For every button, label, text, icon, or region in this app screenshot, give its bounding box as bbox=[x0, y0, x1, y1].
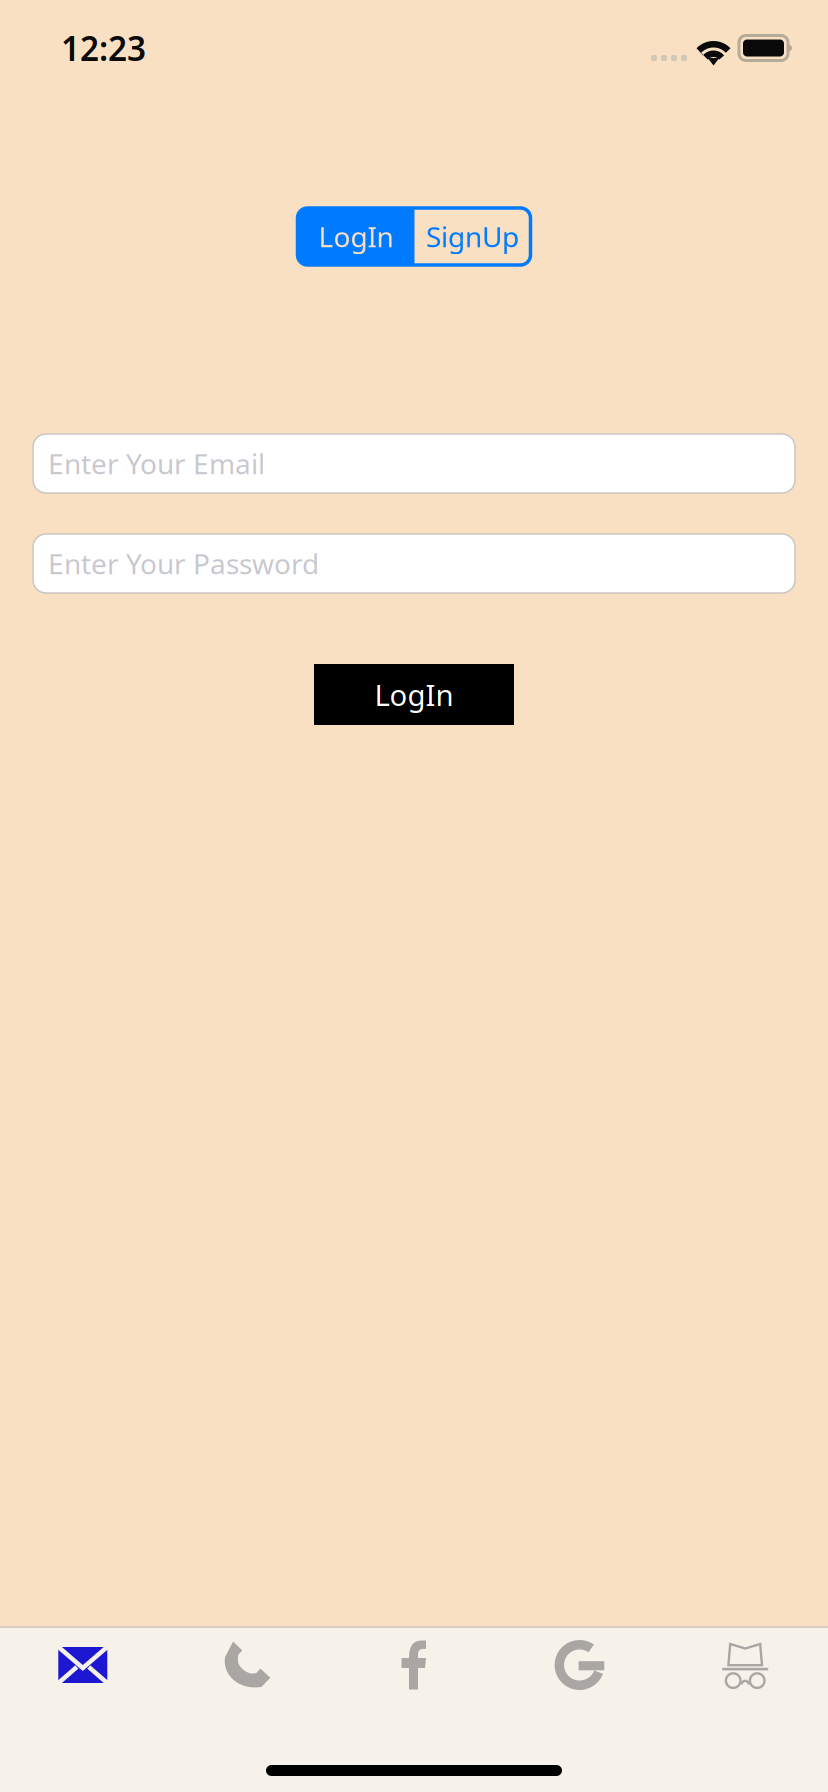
button[interactable]: Mail bbox=[0, 1628, 166, 1702]
button[interactable]: Google bbox=[497, 1628, 662, 1702]
button[interactable]: Facebook bbox=[331, 1628, 497, 1702]
staticText: 12:23 bbox=[61, 26, 146, 70]
button[interactable]: SignUp bbox=[414, 208, 530, 265]
staticText: Enter Your Email bbox=[48, 445, 265, 482]
staticText: SignUp bbox=[426, 218, 519, 255]
staticText: LogIn bbox=[318, 218, 393, 255]
staticText: LogIn bbox=[374, 675, 453, 714]
button[interactable]: LogIn bbox=[314, 664, 514, 725]
button[interactable]: LogIn bbox=[297, 208, 414, 265]
button[interactable]: Phone bbox=[166, 1628, 331, 1702]
staticText: Enter Your Password bbox=[48, 545, 319, 582]
button[interactable]: Private Browsing bbox=[662, 1628, 828, 1702]
